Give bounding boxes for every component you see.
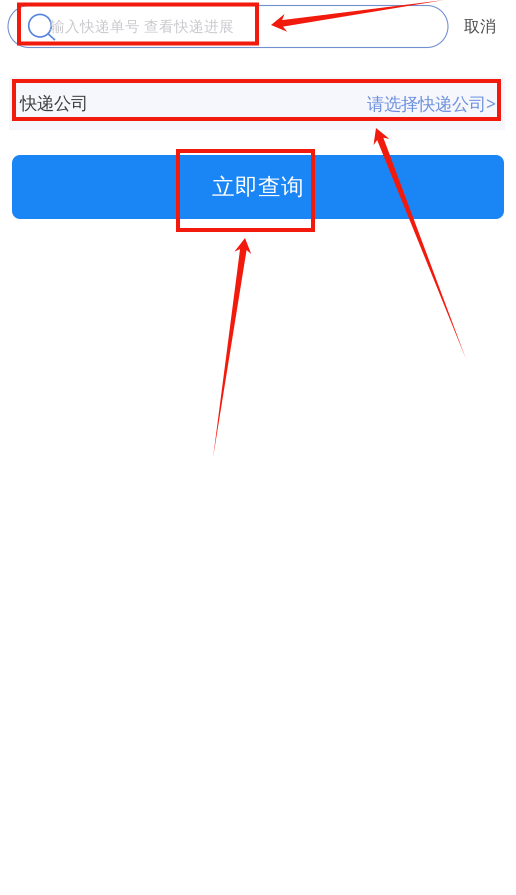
staticText: 取消: [464, 17, 496, 36]
staticText: 快递公司: [20, 93, 88, 114]
button[interactable]: 立即查询: [12, 155, 504, 219]
staticText: 请选择快递公司>: [367, 92, 496, 115]
button[interactable]: 取消: [448, 5, 506, 48]
staticText: 输入快递单号 查看快递进展: [50, 17, 234, 35]
staticText: 立即查询: [212, 173, 304, 201]
button[interactable]: 快递公司: [9, 77, 505, 130]
